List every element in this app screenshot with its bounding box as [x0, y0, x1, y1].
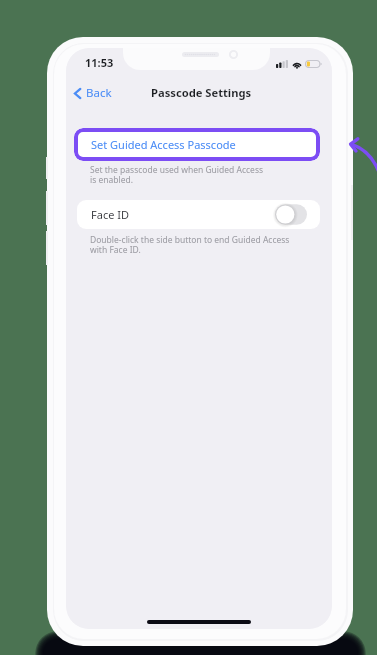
staticText: Set Guided Access Passcode	[91, 137, 236, 152]
other: Callout arrow	[0, 0, 377, 655]
staticText: Passcode Settings	[151, 85, 252, 100]
staticText: Set the passcode used when Guided Access…	[90, 164, 264, 185]
staticText: Face ID	[91, 207, 129, 222]
button[interactable]: Set Guided Access Passcode	[74, 128, 320, 161]
button[interactable]: Back	[74, 85, 112, 101]
button[interactable]: Face ID toggle	[274, 203, 308, 226]
staticText: 11:53	[85, 55, 114, 70]
staticText: Back	[86, 85, 112, 101]
button[interactable]: Face ID	[77, 200, 320, 229]
staticText: Double-click the side button to end Guid…	[90, 234, 290, 255]
